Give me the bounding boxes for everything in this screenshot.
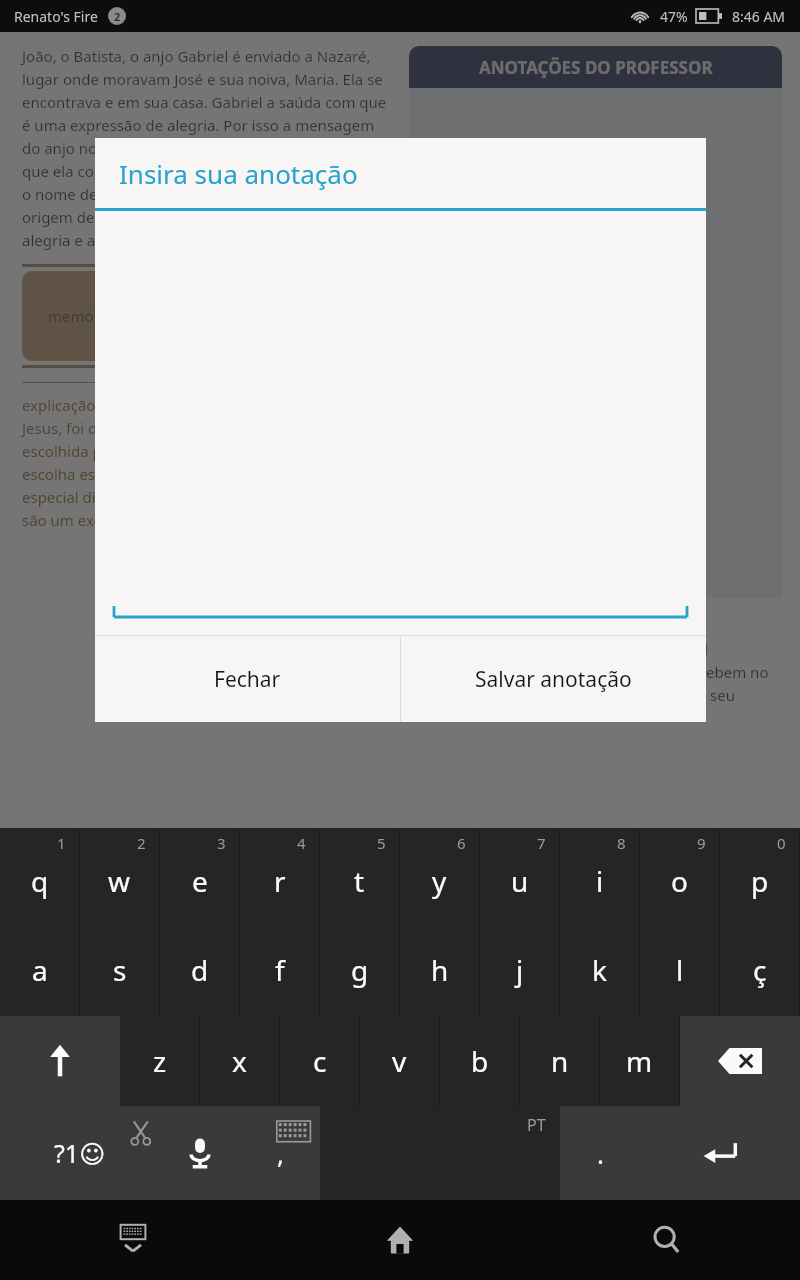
button[interactable]: . <box>560 1106 640 1200</box>
button[interactable]: 9 <box>640 828 719 923</box>
staticText: 0 <box>777 833 786 853</box>
staticText: a <box>32 951 48 989</box>
staticText: j <box>516 951 524 989</box>
staticText: 5 <box>377 833 386 853</box>
button[interactable]: x <box>200 1016 279 1106</box>
staticText: 8 <box>617 833 626 853</box>
button[interactable]: a <box>0 923 79 1016</box>
button[interactable]: Shift <box>0 1016 120 1106</box>
staticText: João, o Batista, o anjo Gabriel é enviad… <box>22 46 395 250</box>
button[interactable]: 1 <box>0 828 79 923</box>
staticText: v <box>392 1042 407 1080</box>
button[interactable]: PT <box>320 1106 560 1200</box>
staticText: b <box>471 1042 489 1080</box>
staticText: 3 <box>217 833 226 853</box>
staticText: 2. OS CAMPONESES <box>409 608 782 631</box>
button[interactable]: Home <box>266 1200 533 1280</box>
staticText: 2 <box>137 833 146 853</box>
staticText: o <box>671 862 688 900</box>
button[interactable]: b <box>440 1016 519 1106</box>
staticText: , <box>277 1136 284 1171</box>
button[interactable]: j <box>480 923 559 1016</box>
button[interactable]: 8 <box>560 828 639 923</box>
button[interactable]: Fechar <box>95 636 400 722</box>
staticText: ANOTAÇÕES DO PROFESSOR <box>479 56 713 79</box>
staticText: p <box>751 862 769 900</box>
staticText: y <box>432 862 447 900</box>
button[interactable]: d <box>160 923 239 1016</box>
staticText: x <box>232 1042 247 1080</box>
button[interactable]: 0 <box>720 828 799 923</box>
staticText: z <box>153 1042 167 1080</box>
staticText: Salvar anotação <box>475 665 632 694</box>
staticText: h <box>431 951 449 989</box>
staticText: u <box>511 862 529 900</box>
staticText: 1 <box>57 833 66 853</box>
button[interactable]: Voice input <box>160 1106 240 1200</box>
staticText: k <box>592 951 607 989</box>
button[interactable]: 7 <box>480 828 559 923</box>
button[interactable]: , <box>240 1106 320 1200</box>
staticText: 4 <box>297 833 306 853</box>
button[interactable]: Hide keyboard <box>0 1200 266 1280</box>
staticText: . <box>597 1136 604 1171</box>
button[interactable]: g <box>320 923 399 1016</box>
staticText: ?1☺ <box>54 1136 106 1170</box>
button[interactable]: s <box>80 923 159 1016</box>
staticText: ç <box>753 951 767 989</box>
staticText: q <box>31 862 49 900</box>
button[interactable]: 5 <box>320 828 399 923</box>
staticText: s <box>113 951 127 989</box>
staticText: 1. A nobreza dos pobres. É um fato de fá… <box>409 639 782 705</box>
button[interactable]: v <box>360 1016 439 1106</box>
button[interactable]: l <box>640 923 719 1016</box>
staticText: d <box>191 951 209 989</box>
staticText: r <box>274 862 286 900</box>
staticText: e <box>192 862 208 900</box>
staticText: 6 <box>457 833 466 853</box>
staticText: n <box>551 1042 569 1080</box>
staticText: Fechar <box>214 665 281 694</box>
button[interactable]: ç <box>720 923 799 1016</box>
button[interactable]: m <box>600 1016 679 1106</box>
button[interactable]: Search <box>533 1200 800 1280</box>
staticText: PT <box>527 1114 546 1136</box>
button[interactable]: 6 <box>400 828 479 923</box>
staticText: 47% <box>660 7 688 26</box>
staticText: Renato's Fire <box>14 7 98 26</box>
button[interactable]: 4 <box>240 828 319 923</box>
staticText: memória <box>48 306 113 326</box>
staticText: 9 <box>697 833 706 853</box>
staticText: f <box>275 951 285 989</box>
staticText: 2 <box>114 9 121 24</box>
button[interactable]: f <box>240 923 319 1016</box>
button[interactable]: Backspace <box>680 1016 800 1106</box>
button[interactable]: c <box>280 1016 359 1106</box>
button[interactable]: 2 <box>80 828 159 923</box>
button[interactable]: n <box>520 1016 599 1106</box>
staticText: 7 <box>537 833 546 853</box>
staticText: c <box>313 1042 327 1080</box>
button[interactable]: 3 <box>160 828 239 923</box>
staticText: l <box>676 951 684 989</box>
staticText: Insira sua anotação <box>119 156 358 191</box>
button[interactable]: h <box>400 923 479 1016</box>
staticText: t <box>354 862 365 900</box>
staticText: i <box>596 862 604 900</box>
button[interactable]: ?1☺ <box>0 1106 160 1200</box>
staticText: explicação do texto nos revela que a Mar… <box>22 395 395 530</box>
staticText: g <box>351 951 369 989</box>
button[interactable]: z <box>120 1016 199 1106</box>
button[interactable]: Salvar anotação <box>401 636 706 722</box>
staticText: 8:46 AM <box>732 7 786 26</box>
staticText: w <box>108 862 131 900</box>
button[interactable]: k <box>560 923 639 1016</box>
button[interactable]: Enter <box>640 1106 800 1200</box>
staticText: m <box>626 1042 653 1080</box>
